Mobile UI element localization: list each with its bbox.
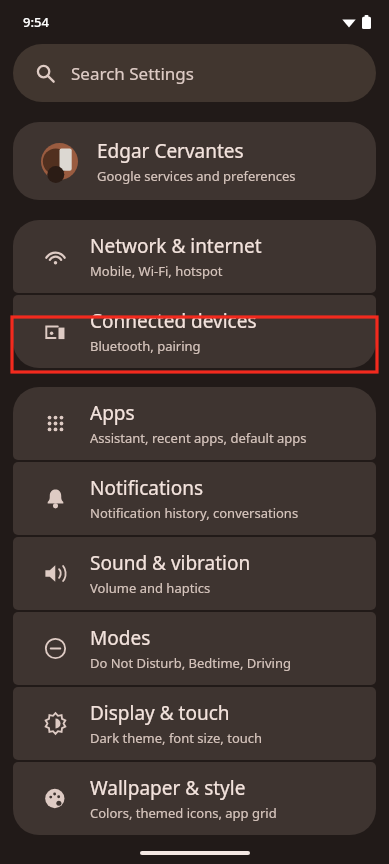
staticText: Edgar Cervantes <box>97 138 244 164</box>
button[interactable]: Network & internet <box>13 220 376 293</box>
staticText: Notifications <box>90 475 204 501</box>
button[interactable]: Connected devices <box>13 295 376 368</box>
button[interactable]: Display & touch <box>13 687 376 760</box>
staticText: Do Not Disturb, Bedtime, Driving <box>90 654 291 672</box>
staticText: Modes <box>90 625 151 651</box>
staticText: 9:54 <box>23 13 49 31</box>
staticText: Volume and haptics <box>90 579 211 597</box>
staticText: Dark theme, font size, touch <box>90 729 263 747</box>
button[interactable]: Edgar Cervantes <box>13 122 376 200</box>
staticText: Bluetooth, pairing <box>90 337 201 355</box>
button[interactable]: Notifications <box>13 462 376 535</box>
button[interactable]: Modes <box>13 612 376 685</box>
staticText: Wallpaper & style <box>90 775 246 801</box>
button[interactable]: Apps <box>13 387 376 460</box>
staticText: Network & internet <box>90 233 262 259</box>
button[interactable]: Sound & vibration <box>13 537 376 610</box>
staticText: Apps <box>90 400 135 426</box>
button[interactable]: Wallpaper & style <box>13 762 376 835</box>
staticText: Assistant, recent apps, default apps <box>90 429 307 447</box>
staticText: Colors, themed icons, app grid <box>90 804 277 822</box>
button[interactable]: Search <box>13 44 376 102</box>
staticText: Sound & vibration <box>90 550 251 576</box>
staticText: Mobile, Wi-Fi, hotspot <box>90 262 223 280</box>
staticText: Display & touch <box>90 700 230 726</box>
other: Search <box>36 64 55 83</box>
staticText: Connected devices <box>90 308 257 334</box>
staticText: Notification history, conversations <box>90 504 299 522</box>
staticText: Search Settings <box>71 62 194 85</box>
staticText: Google services and preferences <box>97 167 296 185</box>
